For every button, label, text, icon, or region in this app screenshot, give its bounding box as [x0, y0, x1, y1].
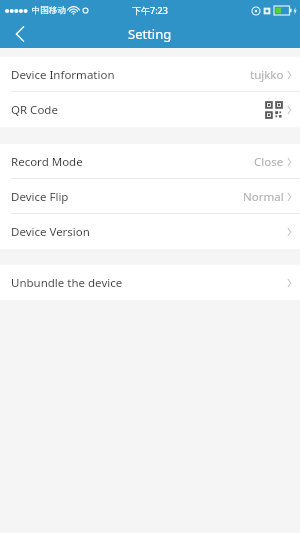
- button[interactable]: Back: [0, 20, 40, 48]
- staticText: tujkko: [250, 67, 284, 83]
- staticText: 中国移动: [32, 5, 66, 16]
- staticText: Device Flip: [11, 189, 69, 205]
- staticText: Device Information: [11, 67, 115, 83]
- button[interactable]: Device Version: [0, 214, 300, 249]
- staticText: Device Version: [11, 224, 90, 240]
- staticText: Setting: [128, 25, 172, 43]
- button[interactable]: Device Information: [0, 57, 300, 92]
- staticText: Unbundle the device: [11, 275, 123, 291]
- staticText: Close: [254, 154, 284, 170]
- button[interactable]: Record Mode: [0, 144, 300, 179]
- button[interactable]: QR Code: [0, 92, 300, 127]
- staticText: Normal: [243, 189, 284, 205]
- staticText: Record Mode: [11, 154, 83, 170]
- button[interactable]: Device Flip: [0, 179, 300, 214]
- staticText: QR Code: [11, 102, 58, 118]
- other: QR Code: [264, 100, 284, 120]
- button[interactable]: Unbundle the device: [0, 265, 300, 300]
- staticText: 下午7:23: [132, 4, 168, 16]
